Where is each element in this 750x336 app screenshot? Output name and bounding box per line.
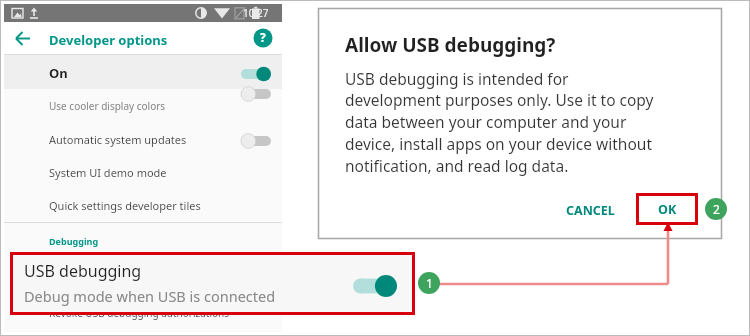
button[interactable]: Back <box>10 25 37 52</box>
staticText: Debugging <box>49 235 99 247</box>
staticText: USB debugging is intended for developmen… <box>345 68 705 188</box>
staticText: OK <box>658 201 677 218</box>
button[interactable] <box>241 66 271 82</box>
button[interactable]: USB debugging <box>10 252 415 315</box>
button[interactable]: Help <box>253 28 273 48</box>
staticText: 10:27 <box>243 6 269 20</box>
staticText: Quick settings developer tiles <box>49 198 201 213</box>
button[interactable]: OK <box>637 194 697 224</box>
staticText: 2 <box>713 201 720 217</box>
button[interactable] <box>353 274 397 298</box>
button[interactable]: CANCEL <box>550 196 630 224</box>
staticText: Revoke USB debugging authorizations <box>49 306 230 320</box>
staticText: Automatic system updates <box>49 132 187 147</box>
staticText: System UI demo mode <box>49 165 167 180</box>
button[interactable]: System UI demo mode <box>4 156 282 189</box>
staticText: 1 <box>426 275 433 291</box>
button[interactable]: Automatic system updates <box>4 123 282 156</box>
staticText: Use cooler display colors <box>49 99 166 113</box>
button[interactable]: Quick settings developer tiles <box>4 189 282 222</box>
staticText: Allow USB debugging? <box>345 32 556 58</box>
button[interactable] <box>241 133 271 149</box>
button[interactable]: Developer options <box>49 31 168 49</box>
button[interactable]: On <box>4 55 282 89</box>
staticText: On <box>49 64 68 82</box>
button[interactable]: Use cooler display colors <box>4 90 282 123</box>
staticText: Debug mode when USB is connected <box>24 286 276 306</box>
button[interactable] <box>241 86 271 102</box>
staticText: ? <box>260 29 266 45</box>
staticText: USB debugging <box>24 260 142 282</box>
staticText: CANCEL <box>566 202 615 219</box>
